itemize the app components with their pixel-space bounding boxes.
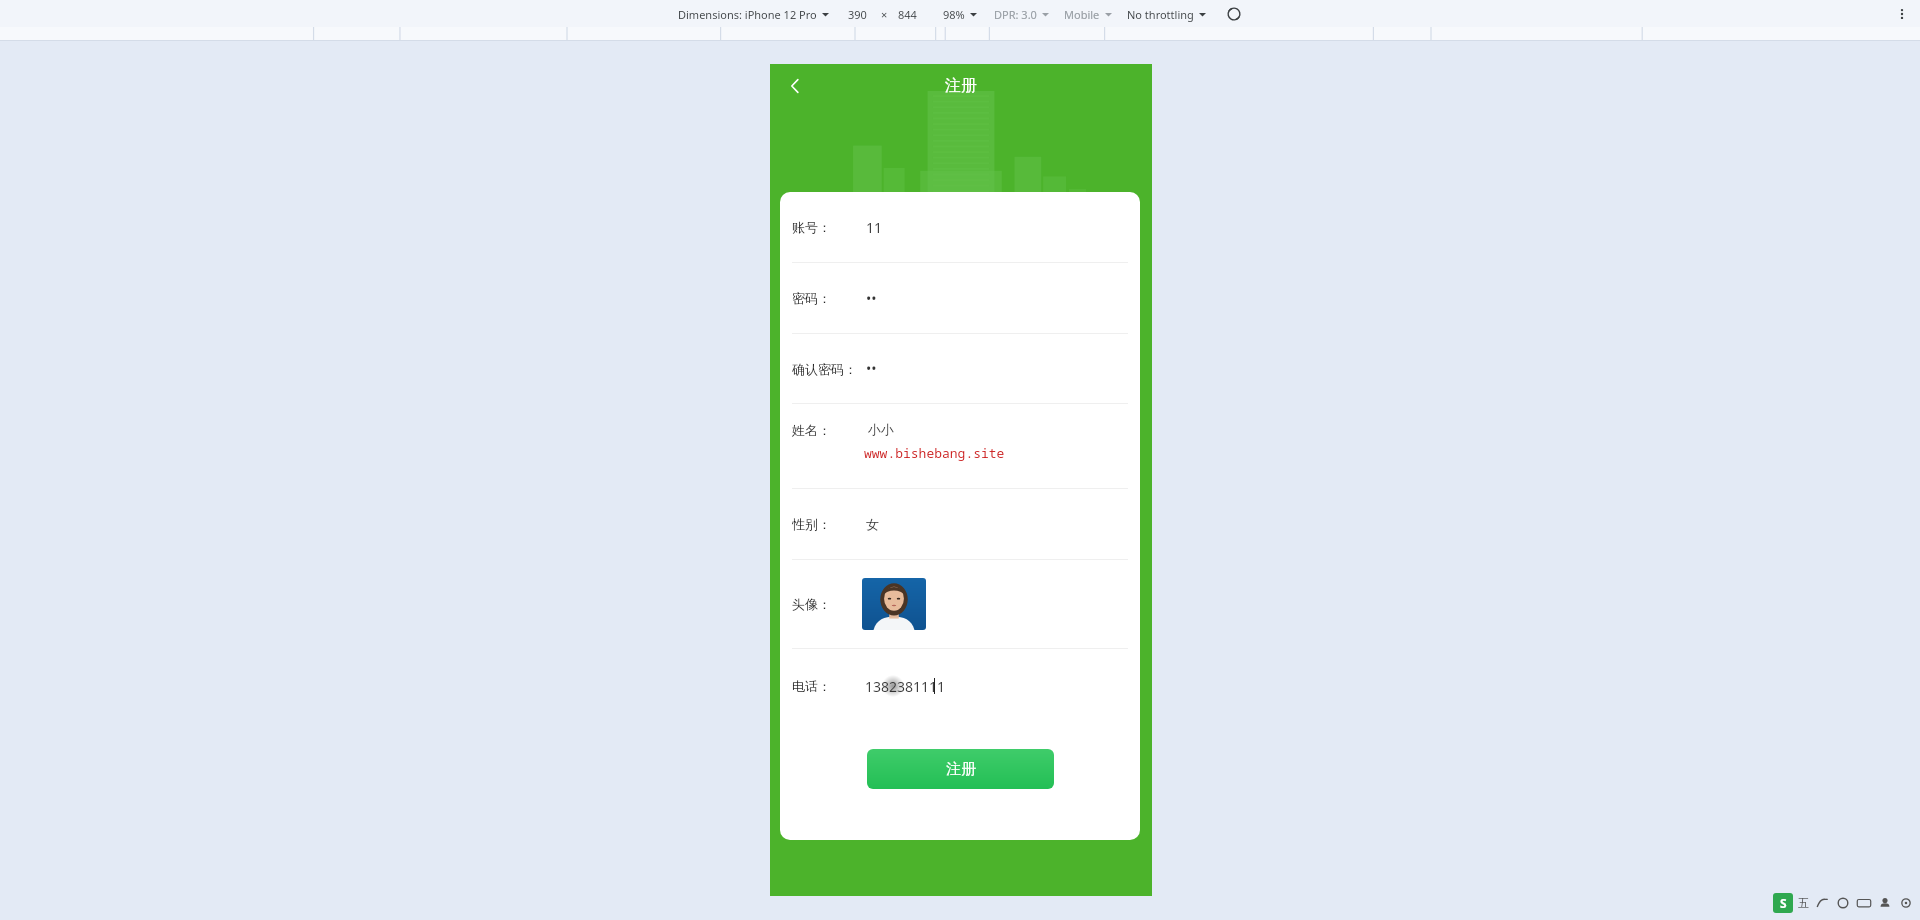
staticText: www.bishebang.site bbox=[864, 444, 1005, 462]
button[interactable]: Tools bbox=[1835, 895, 1851, 911]
staticText: DPR: 3.0 bbox=[994, 7, 1037, 22]
button[interactable]: Account bbox=[1877, 895, 1893, 911]
button[interactable]: 确认密码： bbox=[780, 334, 1140, 403]
staticText: No throttling bbox=[1127, 7, 1194, 22]
staticText: 390 bbox=[848, 7, 867, 22]
staticText: 844 bbox=[898, 7, 917, 22]
button[interactable]: 姓名： bbox=[780, 404, 1140, 488]
button[interactable]: Settings bbox=[1898, 895, 1914, 911]
button[interactable]: 注册 bbox=[867, 749, 1054, 789]
staticText: S bbox=[1780, 895, 1787, 911]
staticText: 五 bbox=[1798, 896, 1809, 910]
staticText: 头像： bbox=[792, 596, 831, 612]
staticText: Dimensions: iPhone 12 Pro bbox=[678, 7, 817, 22]
staticText: 小小 bbox=[868, 421, 894, 437]
staticText: 女 bbox=[866, 516, 879, 532]
staticText: 姓名： bbox=[792, 422, 831, 438]
button[interactable]: Rotate bbox=[1225, 5, 1243, 23]
staticText: 性别： bbox=[792, 516, 831, 532]
staticText: 确认密码： bbox=[792, 361, 857, 377]
staticText: 注册 bbox=[945, 76, 977, 96]
staticText: •• bbox=[866, 359, 877, 378]
button[interactable]: 密码： bbox=[780, 263, 1140, 333]
button[interactable]: Mode bbox=[1814, 895, 1830, 911]
button[interactable]: 账号： bbox=[780, 192, 1140, 262]
staticText: 11 bbox=[866, 218, 883, 237]
staticText: 98% bbox=[943, 7, 965, 22]
staticText: 密码： bbox=[792, 290, 831, 306]
button[interactable]: More options bbox=[1892, 4, 1912, 24]
staticText: 账号： bbox=[792, 219, 831, 235]
button[interactable]: Avatar bbox=[780, 560, 1140, 648]
button[interactable]: Sogou input bbox=[1773, 893, 1793, 913]
staticText: 电话： bbox=[792, 678, 831, 694]
staticText: •• bbox=[866, 289, 877, 308]
staticText: Mobile bbox=[1064, 7, 1100, 22]
staticText: × bbox=[881, 7, 888, 22]
staticText: 注册 bbox=[946, 760, 976, 779]
button[interactable]: 性别： bbox=[780, 489, 1140, 559]
button[interactable]: Back bbox=[778, 69, 812, 103]
button[interactable]: Keyboard bbox=[1856, 895, 1872, 911]
staticText: 1382381111 bbox=[865, 677, 946, 696]
button[interactable]: 电话： bbox=[780, 649, 1140, 723]
